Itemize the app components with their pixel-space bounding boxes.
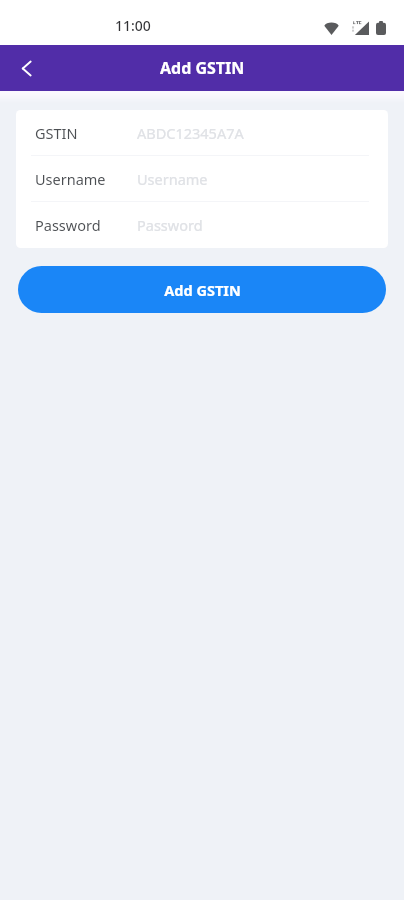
- button[interactable]: Add GSTIN: [18, 266, 386, 313]
- staticText: Add GSTIN: [164, 280, 241, 300]
- staticText: Password: [137, 215, 203, 235]
- staticText: ABDC12345A7A: [137, 123, 244, 143]
- button[interactable]: Back: [3, 45, 49, 91]
- staticText: Password: [35, 215, 101, 235]
- button[interactable]: Password: [16, 202, 388, 248]
- staticText: Add GSTIN: [160, 57, 245, 79]
- staticText: Username: [35, 169, 106, 189]
- staticText: 11:00: [115, 16, 151, 35]
- staticText: Username: [137, 169, 208, 189]
- button[interactable]: Username: [16, 156, 388, 202]
- button[interactable]: GSTIN: [16, 110, 388, 156]
- staticText: GSTIN: [35, 123, 78, 143]
